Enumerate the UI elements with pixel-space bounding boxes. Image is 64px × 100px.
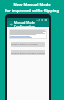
- staticText: New Manual Mode: [13, 2, 51, 7]
- button[interactable]: SELECT BACK CAMERA PHOTO: [11, 50, 45, 55]
- staticText: SELECT FRONT CAMERA PHOTO VALUE: [11, 42, 45, 47]
- staticText: SELECT BACK CAMERA PHOTO: [11, 51, 45, 54]
- staticText: for improved selfie flipping: [5, 8, 59, 13]
- staticText: Manual Mode Configuration: [14, 21, 47, 27]
- button[interactable]: Back: [9, 22, 13, 26]
- button[interactable]: SELECT FRONT CAMERA PHOTO VALUE: [11, 42, 45, 47]
